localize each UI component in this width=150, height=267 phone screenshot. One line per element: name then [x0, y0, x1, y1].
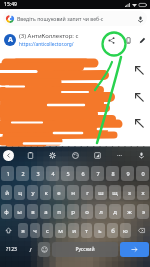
button[interactable]: й — [1, 185, 12, 200]
staticText: ю — [123, 227, 128, 235]
staticText: х — [141, 189, 145, 197]
button[interactable]: mic — [136, 150, 147, 161]
button[interactable]: 2 — [16, 166, 29, 181]
staticText: у — [31, 189, 35, 197]
button[interactable]: л — [95, 204, 107, 219]
button[interactable]: т — [81, 223, 92, 238]
button[interactable]: в — [27, 204, 38, 219]
button[interactable]: ж — [123, 204, 135, 219]
button[interactable]: ю — [120, 223, 131, 238]
staticText: 15:49 — [4, 1, 17, 8]
staticText: м — [58, 227, 63, 235]
staticText: ц — [18, 189, 22, 197]
button[interactable]: Share — [106, 35, 117, 46]
button[interactable]: 8 — [106, 166, 119, 181]
button[interactable]: у — [27, 185, 38, 200]
staticText: 4 — [51, 170, 55, 177]
button[interactable]: clipboard — [25, 150, 36, 161]
button[interactable]: ь — [94, 223, 105, 238]
staticText: й — [5, 189, 9, 197]
staticText: ь — [98, 227, 102, 235]
button[interactable]: dots — [114, 150, 125, 161]
button[interactable]: а — [40, 204, 51, 219]
staticText: 0 — [141, 170, 145, 177]
button[interactable]: г — [81, 185, 93, 200]
staticText: A — [8, 35, 13, 45]
button[interactable]: emoji — [38, 242, 50, 257]
button[interactable]: 4 — [46, 166, 59, 181]
button[interactable]: н — [67, 185, 79, 200]
staticText: б — [111, 227, 115, 235]
staticText: и — [72, 227, 76, 235]
button[interactable]: Voice search — [135, 14, 145, 24]
button[interactable]: п — [53, 204, 65, 219]
button[interactable]: translate — [92, 150, 103, 161]
staticText: к — [44, 189, 48, 197]
button[interactable]: Enter — [120, 242, 149, 257]
staticText: 6 — [81, 170, 85, 177]
button[interactable]: Edit — [137, 35, 148, 46]
button[interactable]: ш — [95, 185, 107, 200]
button[interactable]: ?123 — [1, 242, 22, 257]
staticText: 5 — [66, 170, 70, 177]
button[interactable]: и — [68, 223, 79, 238]
staticText: з — [128, 189, 131, 197]
staticText: 7 — [96, 170, 100, 177]
button[interactable]: е — [53, 185, 65, 200]
button[interactable]: 3 — [31, 166, 44, 181]
button[interactable]: б — [107, 223, 118, 238]
staticText: а — [44, 208, 48, 216]
staticText: ш — [98, 189, 104, 197]
button[interactable]: backspace — [133, 223, 149, 238]
button[interactable]: settings — [47, 150, 58, 161]
button[interactable]: х — [137, 185, 149, 200]
button[interactable]: Русский — [52, 242, 118, 257]
button[interactable]: к — [40, 185, 51, 200]
button[interactable]: shift — [1, 223, 16, 238]
staticText: с — [46, 227, 49, 235]
staticText: т — [85, 227, 88, 235]
button[interactable]: о — [81, 204, 93, 219]
button[interactable]: с — [42, 223, 53, 238]
button[interactable]: ф — [1, 204, 12, 219]
staticText: н — [71, 189, 75, 197]
staticText: в — [31, 208, 35, 216]
button[interactable]: 7 — [91, 166, 104, 181]
button[interactable]: ц — [14, 185, 25, 200]
staticText: о — [85, 208, 89, 216]
button[interactable]: 9 — [121, 166, 134, 181]
button[interactable]: Введіть пошуковий запит чи веб-с — [3, 11, 147, 26]
staticText: д — [113, 208, 117, 216]
button[interactable]: 0 — [136, 166, 149, 181]
button[interactable]: ы — [14, 204, 25, 219]
staticText: ф — [4, 208, 9, 216]
staticText: г — [86, 189, 89, 197]
staticText: Русский — [75, 246, 95, 253]
staticText: 8 — [111, 170, 115, 177]
button[interactable]: э — [137, 204, 149, 219]
staticText: Введіть пошуковий запит чи веб-с — [17, 15, 134, 22]
staticText: https://anticollector.org/ — [19, 41, 74, 48]
staticText: / — [29, 246, 32, 253]
button[interactable]: 6 — [76, 166, 89, 181]
button[interactable]: 1 — [1, 166, 14, 181]
staticText: э — [142, 208, 145, 216]
button[interactable]: д — [109, 204, 121, 219]
button[interactable]: м — [55, 223, 66, 238]
button[interactable]: palette — [70, 150, 81, 161]
button[interactable]: щ — [109, 185, 121, 200]
button[interactable]: Back — [3, 150, 14, 161]
button[interactable]: / — [24, 242, 36, 257]
button[interactable]: р — [67, 204, 79, 219]
button[interactable]: A — [4, 30, 148, 50]
staticText: р — [71, 208, 75, 216]
button[interactable]: ч — [30, 223, 40, 238]
staticText: 9 — [126, 170, 130, 177]
staticText: (3) АнтиКоллектор: c — [19, 32, 79, 40]
staticText: щ — [112, 189, 118, 197]
staticText: ж — [127, 208, 132, 216]
button[interactable]: з — [123, 185, 135, 200]
button[interactable]: я — [18, 223, 28, 238]
button[interactable]: Open on device — [123, 35, 134, 46]
button[interactable]: 5 — [61, 166, 74, 181]
